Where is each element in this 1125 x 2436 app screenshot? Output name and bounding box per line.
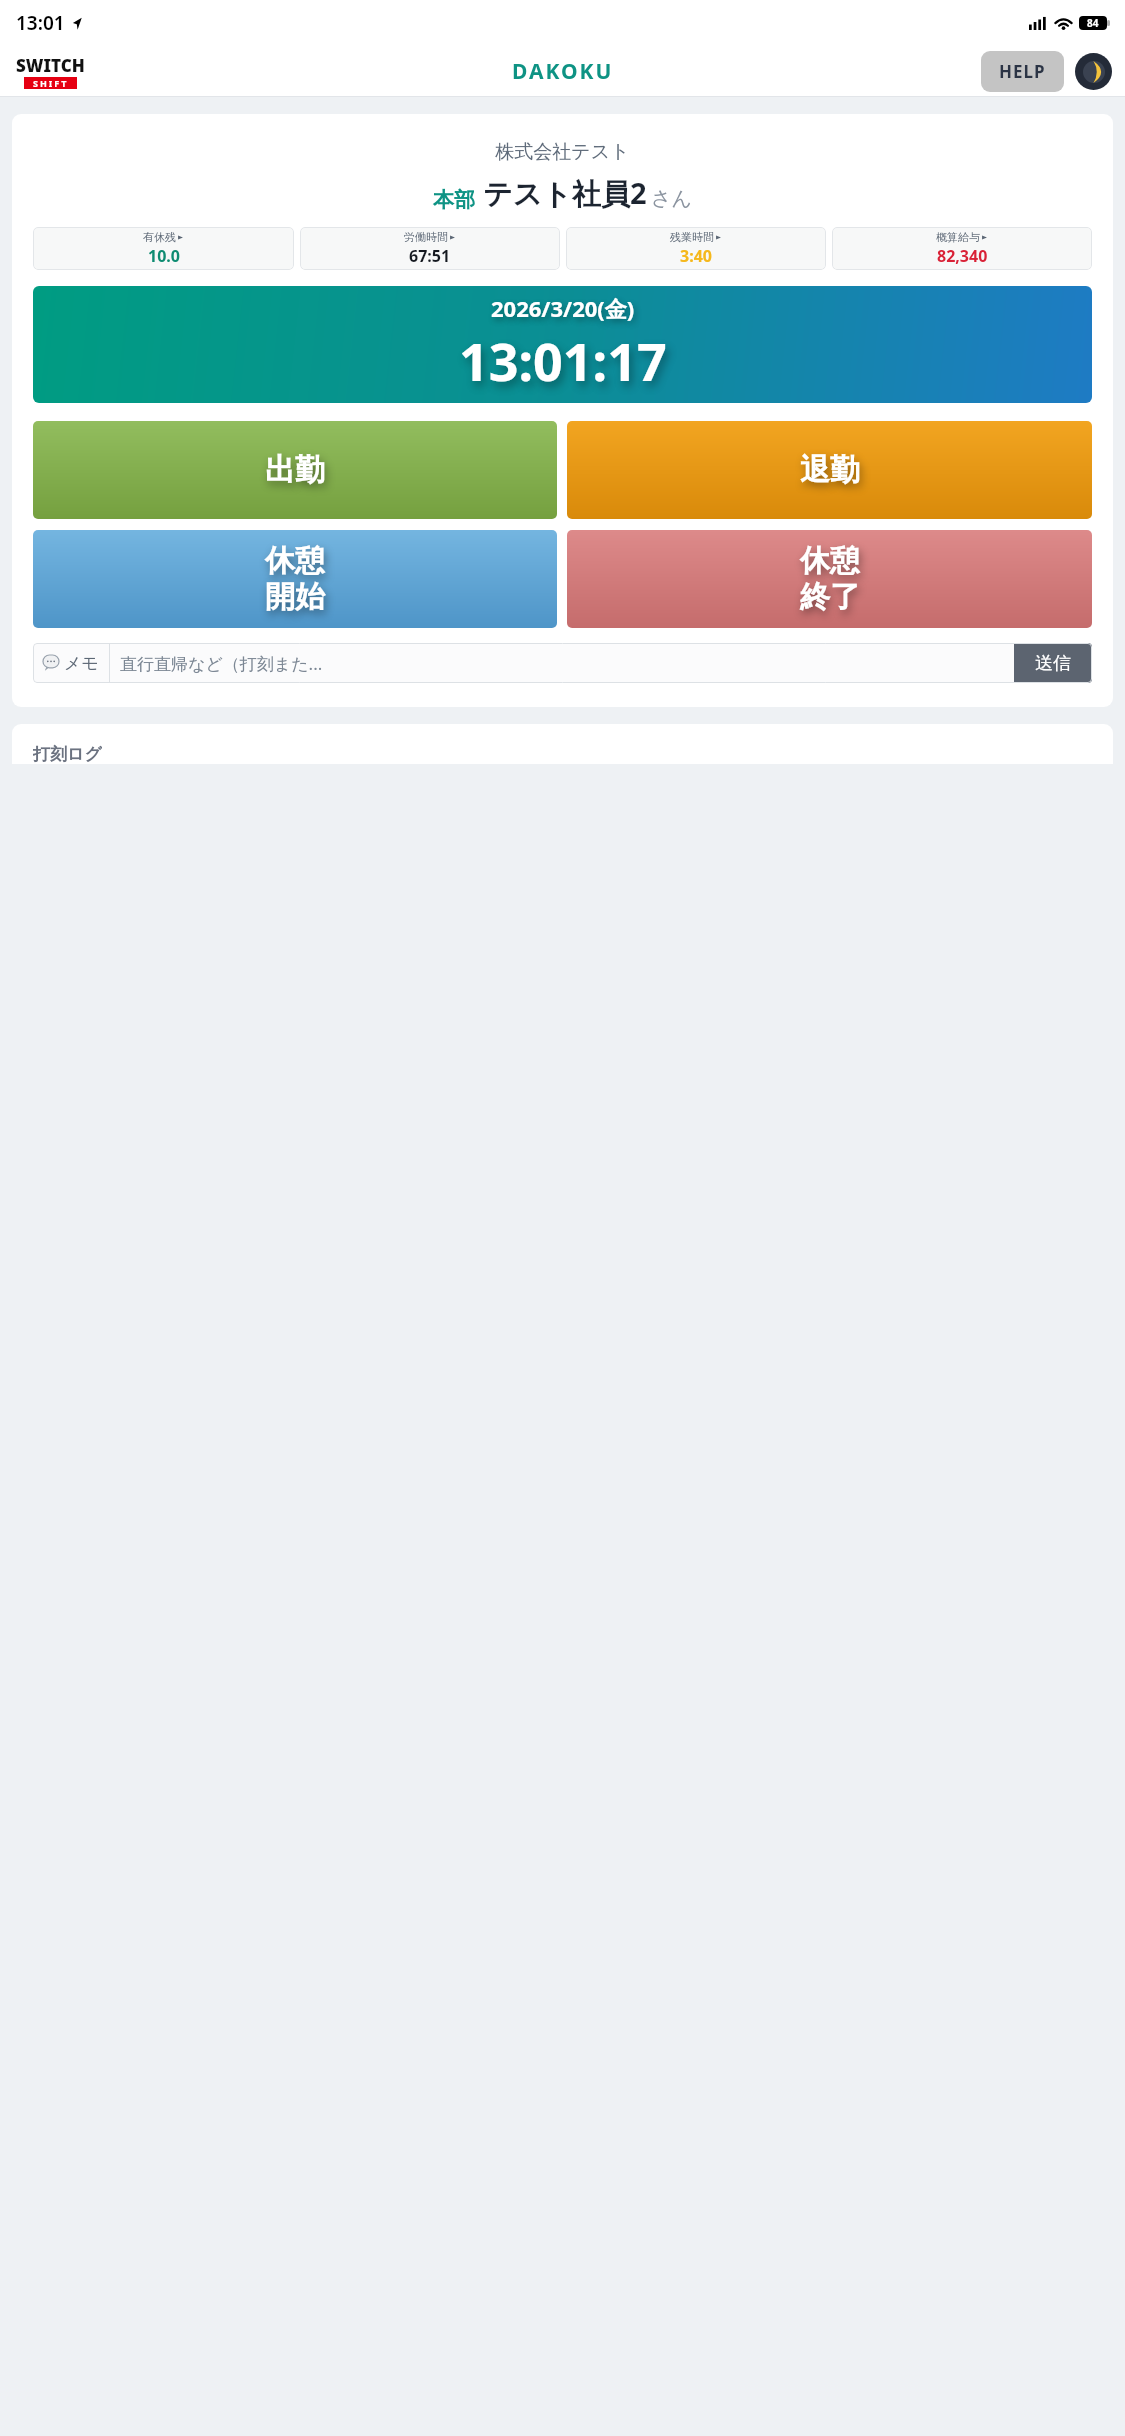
button[interactable]: 概算給与 (832, 227, 1092, 270)
button[interactable]: 出勤 (33, 421, 557, 519)
staticText: 有休残 (143, 230, 176, 244)
staticText: さん (651, 186, 692, 211)
button[interactable]: 残業時間 (566, 227, 826, 270)
staticText: テスト社員2 (483, 173, 647, 213)
button[interactable]: 送信 (1014, 643, 1092, 683)
staticText: SHIFT (33, 77, 69, 89)
staticText: SWITCH (16, 54, 85, 77)
staticText: 13:01 (16, 10, 65, 36)
button[interactable]: Account (1075, 53, 1112, 90)
staticText: 送信 (1035, 652, 1071, 675)
staticText: 概算給与 (936, 230, 980, 244)
staticText: 10.0 (148, 245, 180, 267)
staticText: 3:40 (680, 245, 712, 267)
staticText: 退勤 (800, 451, 860, 489)
staticText: 残業時間 (670, 230, 714, 244)
staticText: 休憩 開始 (265, 542, 325, 616)
staticText: 打刻ログ (33, 744, 102, 764)
button[interactable]: HELP (981, 51, 1064, 92)
staticText: 労働時間 (404, 230, 448, 244)
button[interactable]: メモ (33, 643, 109, 683)
button[interactable]: 直行直帰など（打刻また... (110, 643, 1014, 683)
staticText: メモ (64, 653, 99, 674)
button[interactable]: SWITCH SHIFT (16, 54, 85, 89)
staticText: HELP (999, 60, 1046, 83)
staticText: 本部 (433, 187, 475, 213)
staticText: 株式会社テスト (33, 140, 1092, 164)
staticText: DAKOKU (512, 57, 614, 86)
staticText: 2026/3/20(金) (491, 293, 635, 323)
button[interactable]: 有休残 (33, 227, 294, 270)
staticText: 直行直帰など（打刻また... (120, 652, 323, 675)
button[interactable]: 休憩 開始 (33, 530, 557, 628)
staticText: 13:01:17 (459, 325, 667, 396)
button[interactable]: 2026/3/20(金) (33, 286, 1092, 403)
button[interactable]: 退勤 (567, 421, 1092, 519)
button[interactable]: 労働時間 (300, 227, 560, 270)
staticText: 82,340 (937, 245, 988, 267)
staticText: 67:51 (409, 245, 451, 267)
staticText: 出勤 (265, 451, 325, 489)
button[interactable]: 休憩 終了 (567, 530, 1092, 628)
staticText: 休憩 終了 (800, 542, 860, 616)
staticText: 84 (1087, 16, 1099, 30)
